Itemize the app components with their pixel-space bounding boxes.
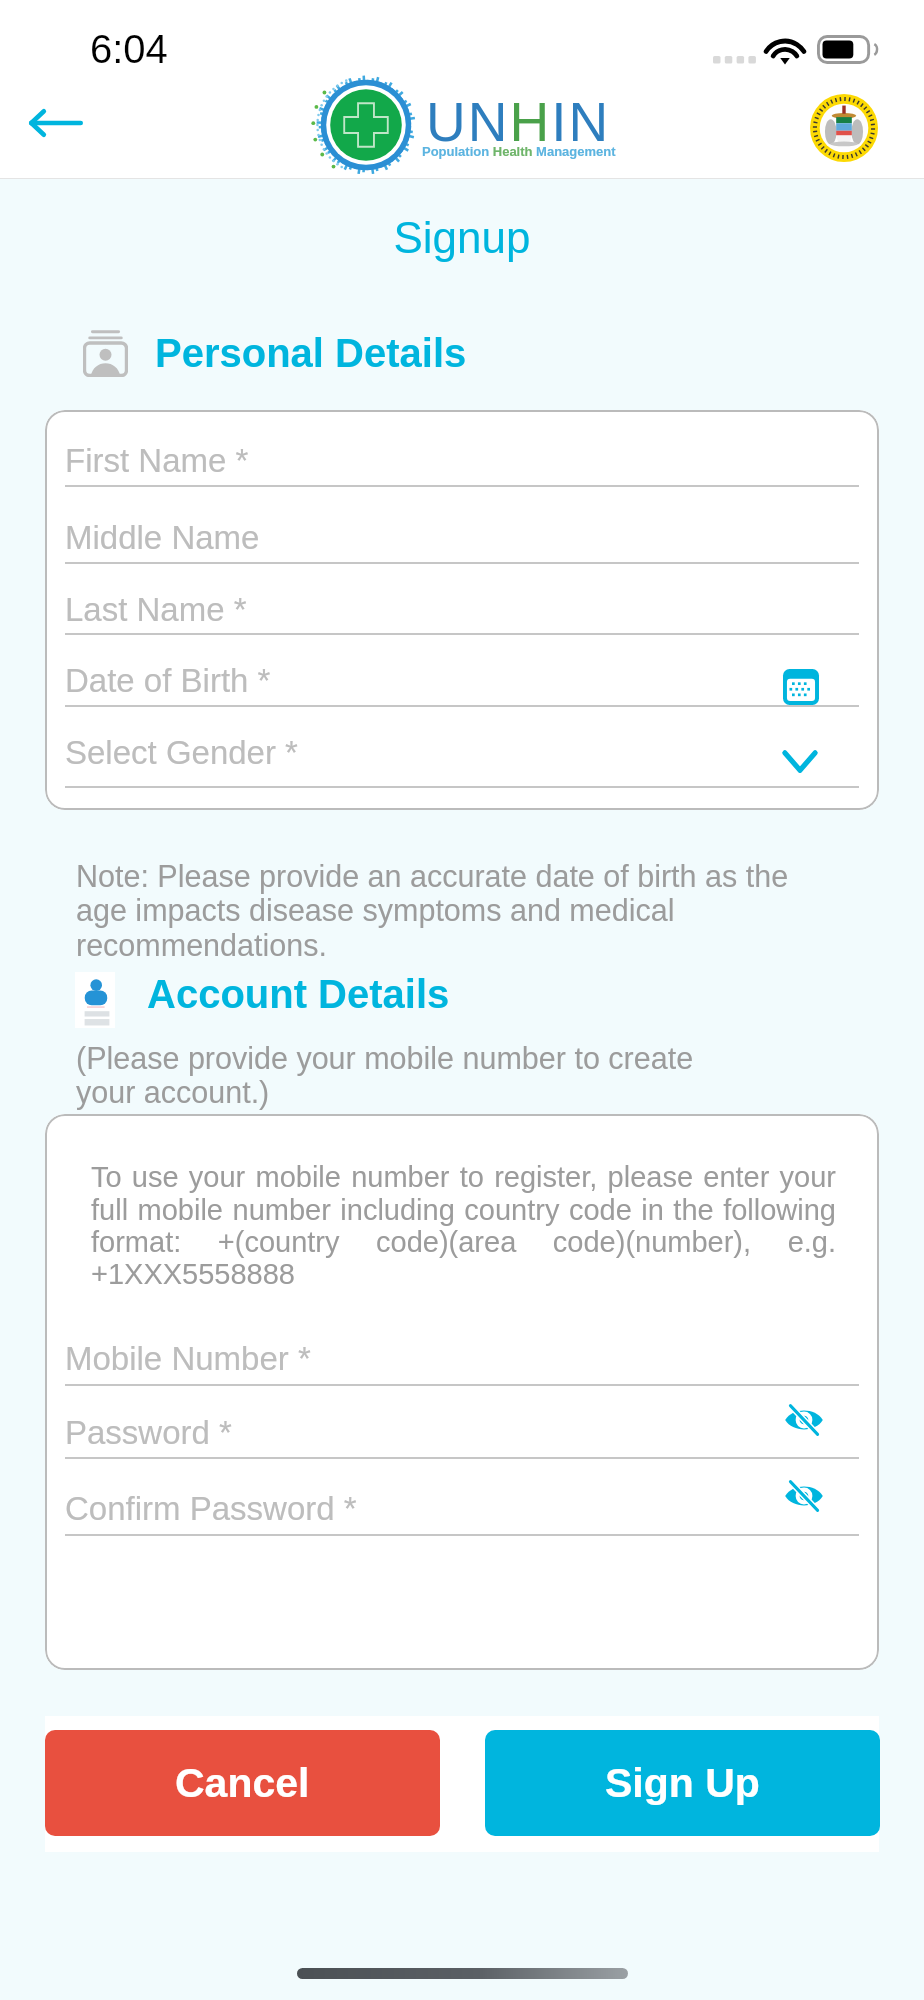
button[interactable]: Password * [65,1400,859,1461]
button[interactable]: Pick date [783,669,819,705]
button[interactable]: Mobile Number * [65,1326,859,1388]
button[interactable]: First Name * [65,428,859,489]
staticText: Select Gender * [65,734,298,771]
staticText: Population Health Management [422,144,616,159]
button[interactable]: Ministry of Health emblem [808,92,880,164]
button[interactable]: Select Gender * [65,720,859,790]
button[interactable]: Show password [784,1405,824,1435]
button[interactable]: Sign Up [485,1730,880,1836]
button[interactable]: Last Name * [65,577,859,637]
staticText: UNHIN [426,91,611,152]
staticText: Account Details [147,972,450,1017]
staticText: Personal Details [155,331,467,376]
staticText: Sign Up [605,1760,760,1806]
staticText: Cancel [175,1760,310,1806]
button[interactable]: Cancel [45,1730,440,1836]
staticText: Middle Name [65,519,260,556]
staticText: Password * [65,1414,232,1451]
button[interactable]: Personal Details [83,322,467,384]
button[interactable]: Confirm Password * [65,1476,859,1538]
button[interactable]: Select gender [782,750,818,773]
staticText: First Name * [65,442,249,479]
button[interactable]: Middle Name [65,505,859,566]
staticText: To use your mobile number to register, p… [91,1161,836,1290]
button[interactable]: Show confirm password [784,1481,824,1511]
button[interactable]: Date of Birth * [65,648,859,709]
staticText: (Please provide your mobile number to cr… [76,1041,746,1109]
staticText: Confirm Password * [65,1490,357,1527]
button[interactable]: Account Details [70,966,490,1028]
staticText: Last Name * [65,591,247,628]
staticText: 6:04 [90,27,168,72]
staticText: Signup [0,213,924,262]
staticText: Note: Please provide an accurate date of… [76,859,816,962]
staticText: Date of Birth * [65,662,271,699]
button[interactable]: Back [8,90,104,156]
staticText: Mobile Number * [65,1340,311,1377]
